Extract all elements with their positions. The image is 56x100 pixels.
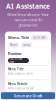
staticText: Menu Title xyxy=(8,35,29,40)
staticText: Meet SmartAssist. Your own personal AI g… xyxy=(7,12,49,28)
staticText: Review xyxy=(8,51,21,56)
button[interactable]: Generate xyxy=(31,35,48,40)
staticText: Generate Draft xyxy=(13,93,42,98)
staticText: Menu Title xyxy=(8,67,24,71)
staticText: Add a menu item xyxy=(8,72,32,76)
button[interactable]: Short xyxy=(8,42,19,48)
button[interactable]: Generate text xyxy=(8,58,29,63)
staticText: Long xyxy=(23,43,30,47)
staticText: Menu Details xyxy=(8,82,27,86)
button[interactable]: Generate Draft xyxy=(1,92,55,99)
button[interactable]: Long xyxy=(21,42,32,48)
staticText: Short xyxy=(10,43,17,47)
staticText: Generate xyxy=(33,36,46,39)
staticText: Add a menu detail xyxy=(8,87,34,90)
staticText: Generate text xyxy=(10,57,23,64)
staticText: AI Assistance xyxy=(6,2,50,11)
